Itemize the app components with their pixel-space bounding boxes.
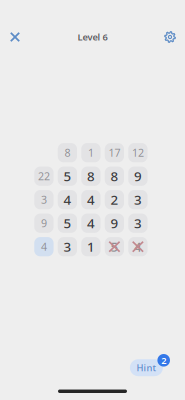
staticText: 8: [87, 167, 95, 185]
staticText: 12: [132, 146, 144, 160]
staticText: 8: [64, 146, 70, 160]
staticText: 9: [110, 214, 118, 232]
staticText: 3: [41, 193, 47, 207]
staticText: 4: [87, 214, 95, 232]
staticText: 9: [41, 216, 47, 230]
staticText: 3: [134, 191, 142, 208]
staticText: 1: [87, 238, 95, 255]
staticText: 4: [41, 240, 47, 254]
button[interactable]: Hint: [130, 354, 170, 377]
staticText: 9: [134, 167, 142, 185]
staticText: 2: [161, 354, 166, 366]
staticText: 4: [63, 191, 71, 208]
staticText: 3: [63, 238, 71, 255]
staticText: 4: [134, 238, 142, 255]
button[interactable]: Settings: [155, 22, 185, 52]
staticText: 5: [63, 214, 71, 232]
staticText: 3: [134, 214, 142, 232]
staticText: 17: [108, 146, 120, 160]
staticText: 8: [110, 167, 118, 185]
staticText: 5: [110, 238, 118, 255]
staticText: 4: [87, 191, 95, 208]
button[interactable]: Close: [0, 22, 30, 52]
staticText: 2: [110, 191, 118, 208]
staticText: Hint: [136, 361, 156, 374]
staticText: 22: [38, 169, 50, 183]
staticText: Level 6: [77, 31, 107, 43]
staticText: 1: [88, 146, 94, 160]
staticText: 5: [63, 167, 71, 185]
